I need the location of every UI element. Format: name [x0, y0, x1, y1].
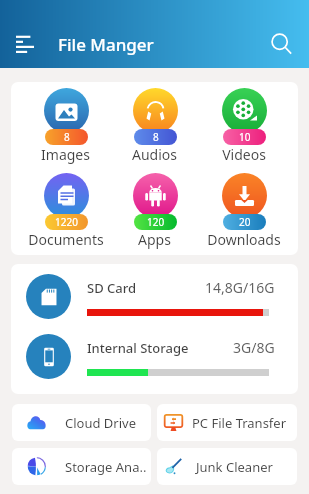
staticText: 8: [64, 130, 70, 144]
button[interactable]: Search: [261, 24, 301, 64]
button[interactable]: 8: [21, 88, 110, 164]
staticText: Audios: [132, 145, 177, 164]
staticText: 1220: [55, 215, 78, 229]
button[interactable]: Storage Ana..: [12, 448, 151, 485]
staticText: 10: [239, 130, 251, 144]
staticText: 3G/8G: [233, 338, 275, 357]
staticText: Storage Ana..: [65, 458, 147, 476]
staticText: Apps: [138, 230, 171, 249]
button[interactable]: SD Card: [11, 274, 298, 319]
staticText: SD Card: [87, 279, 137, 297]
staticText: Cloud Drive: [65, 414, 136, 432]
staticText: PC File Transfer: [192, 414, 287, 432]
button[interactable]: 20: [199, 173, 288, 249]
button[interactable]: 8: [110, 88, 199, 164]
button[interactable]: Junk Cleaner: [157, 448, 297, 485]
staticText: Internal Storage: [87, 339, 189, 357]
staticText: 20: [239, 215, 251, 229]
staticText: Images: [41, 145, 90, 164]
button[interactable]: PC File Transfer: [157, 404, 297, 441]
button[interactable]: 120: [110, 173, 199, 249]
staticText: 8: [153, 130, 159, 144]
staticText: 14,8G/16G: [205, 278, 275, 297]
staticText: Videos: [222, 145, 266, 164]
staticText: Downloads: [207, 230, 281, 249]
staticText: Junk Cleaner: [196, 458, 273, 476]
button[interactable]: Cloud Drive: [12, 404, 151, 441]
staticText: File Manger: [58, 33, 154, 56]
button[interactable]: Internal Storage: [11, 334, 298, 379]
button[interactable]: Menu: [5, 24, 45, 64]
staticText: 120: [147, 215, 165, 229]
button[interactable]: 10: [199, 88, 288, 164]
button[interactable]: 1220: [21, 173, 110, 249]
staticText: Documents: [28, 230, 104, 249]
